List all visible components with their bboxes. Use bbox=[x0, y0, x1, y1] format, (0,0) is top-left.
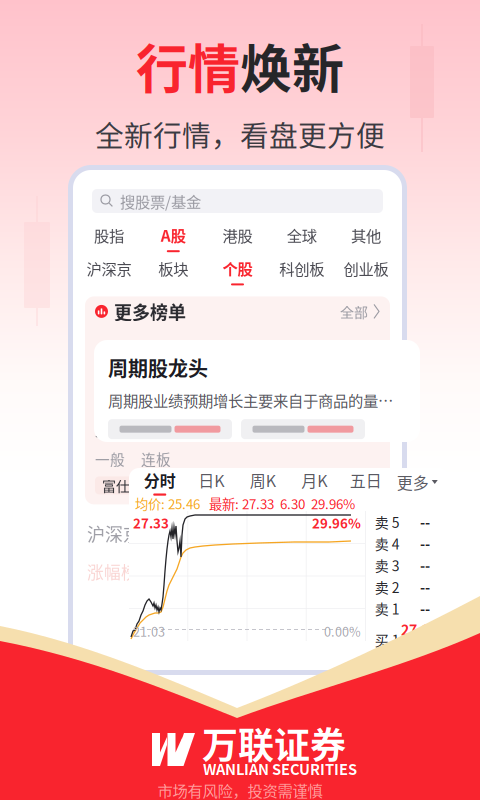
button[interactable]: 板块 bbox=[141, 257, 205, 285]
staticText: 分时 bbox=[144, 468, 176, 491]
staticText: 万联证券 bbox=[202, 717, 346, 769]
button[interactable]: 个股 bbox=[205, 257, 270, 285]
staticText: 连板 bbox=[141, 448, 171, 469]
staticText: 卖 2 bbox=[375, 577, 400, 597]
staticText: -- bbox=[420, 533, 430, 554]
button[interactable]: 港股 bbox=[205, 224, 270, 252]
staticText: 更多 bbox=[397, 470, 429, 494]
staticText: 29.96% bbox=[312, 513, 361, 532]
staticText: 27.33 bbox=[133, 513, 169, 532]
staticText: 均价: bbox=[135, 494, 165, 513]
staticText: 0.00% bbox=[324, 622, 361, 640]
staticText: 搜股票/基金 bbox=[120, 190, 201, 212]
staticText: 卖 3 bbox=[375, 555, 400, 575]
button[interactable]: 更多 bbox=[391, 470, 443, 494]
staticText: 27.33 bbox=[401, 619, 430, 660]
button[interactable]: 沪深京 bbox=[77, 257, 141, 285]
staticText: 富仕 bbox=[102, 475, 130, 496]
staticText: 卖 4 bbox=[375, 533, 400, 554]
staticText: 涨幅榜 bbox=[87, 559, 138, 584]
staticText: 其他 bbox=[351, 224, 381, 246]
button[interactable]: A股 bbox=[141, 224, 205, 252]
staticText: 沪深京 bbox=[87, 520, 141, 546]
staticText: -- bbox=[420, 555, 430, 575]
staticText: 市场有风险，投资需谨慎 bbox=[157, 779, 322, 800]
staticText: 21.03 bbox=[133, 622, 165, 640]
button[interactable]: 五日 bbox=[340, 468, 391, 496]
staticText: 全球 bbox=[287, 224, 317, 246]
staticText: 27.33 bbox=[239, 494, 274, 513]
staticText: 周K bbox=[250, 468, 276, 491]
button[interactable]: 日K bbox=[185, 468, 237, 496]
staticText: 科创板 bbox=[279, 257, 324, 279]
staticText: 沪深京 bbox=[87, 257, 132, 279]
staticText: 月K bbox=[301, 468, 327, 491]
staticText: 一般 bbox=[95, 448, 125, 469]
staticText: 全新行情，看盘更方便 bbox=[95, 113, 385, 155]
button[interactable]: 科创板 bbox=[270, 257, 334, 285]
staticText: WANLIAN SECURITIES bbox=[203, 758, 357, 779]
button[interactable]: 周K bbox=[237, 468, 288, 496]
staticText: 29.96% bbox=[305, 494, 355, 513]
button[interactable]: 分时 bbox=[134, 468, 185, 496]
staticText: -- bbox=[420, 512, 430, 532]
button[interactable]: 搜股票/基金 bbox=[92, 189, 383, 213]
staticText: 个股 bbox=[222, 257, 252, 279]
staticText: 行情 bbox=[136, 28, 240, 103]
button[interactable]: 创业板 bbox=[334, 257, 398, 285]
staticText: 周期股业绩预期增长主要来自于商品的量… bbox=[108, 389, 393, 411]
staticText: -- bbox=[420, 598, 430, 619]
button[interactable]: 月K bbox=[288, 468, 340, 496]
staticText: 港股 bbox=[222, 224, 252, 246]
staticText: 焕新 bbox=[240, 28, 344, 103]
staticText: 全部 bbox=[340, 301, 368, 322]
staticText: 周期股龙头 bbox=[108, 353, 208, 382]
staticText: 买 1 bbox=[375, 629, 400, 650]
staticText: 股指 bbox=[94, 224, 124, 246]
staticText: 五日 bbox=[350, 468, 382, 491]
staticText: 创业板 bbox=[343, 257, 388, 279]
button[interactable]: 股指 bbox=[77, 224, 141, 252]
staticText: 更多榜单 bbox=[114, 298, 186, 324]
staticText: A股 bbox=[161, 224, 186, 246]
button[interactable]: 全球 bbox=[270, 224, 334, 252]
staticText: 卖 5 bbox=[375, 512, 400, 532]
staticText: 最新: bbox=[200, 494, 239, 513]
staticText: -- bbox=[420, 577, 430, 597]
button[interactable]: 其他 bbox=[334, 224, 398, 252]
button[interactable]: 更多榜单 bbox=[85, 296, 390, 326]
staticText: 日K bbox=[198, 468, 224, 491]
staticText: 卖 1 bbox=[375, 598, 400, 619]
staticText: 25.46 bbox=[165, 494, 200, 513]
staticText: 板块 bbox=[158, 257, 188, 279]
staticText: 6.30 bbox=[274, 494, 305, 513]
staticText: 涨停榜 bbox=[95, 415, 149, 441]
